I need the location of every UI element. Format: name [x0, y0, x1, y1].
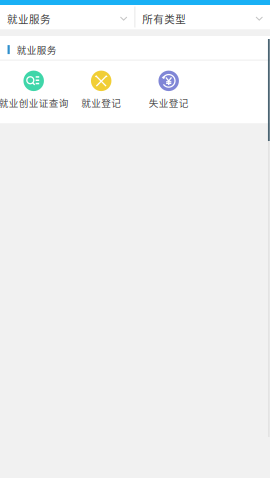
staticText: 就业登记 — [81, 96, 121, 110]
staticText: 就业服务 — [17, 43, 57, 56]
button[interactable]: 就业服务 — [0, 7, 134, 31]
button[interactable]: 就业创业证查询 — [0, 61, 67, 124]
staticText: 就业服务 — [7, 11, 51, 26]
button[interactable]: 就业登记 — [67, 61, 135, 124]
button[interactable]: 失业登记 — [135, 61, 202, 124]
button[interactable]: 所有类型 — [135, 7, 270, 31]
staticText: 所有类型 — [142, 11, 186, 26]
staticText: 就业创业证查询 — [0, 96, 69, 110]
staticText: 失业登记 — [149, 96, 189, 110]
